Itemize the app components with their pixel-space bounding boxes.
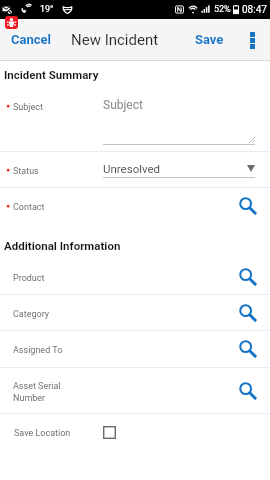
staticText: Incident Summary — [4, 68, 99, 81]
button[interactable]: Product — [0, 259, 270, 294]
button[interactable]: Search — [233, 334, 263, 364]
staticText: Asset Serial Number — [13, 381, 61, 403]
button[interactable]: Save Location checkbox — [103, 422, 123, 442]
staticText: Contact — [13, 202, 45, 213]
staticText: Subject — [103, 98, 143, 112]
button[interactable]: Search — [233, 298, 263, 328]
staticText: Save Location — [14, 428, 71, 439]
staticText: Unresolved — [103, 162, 247, 175]
button[interactable]: Search — [233, 191, 263, 221]
staticText: Category — [13, 309, 50, 320]
staticText: Status — [13, 166, 39, 177]
staticText: Product — [13, 273, 45, 284]
button[interactable]: Status — [0, 152, 270, 187]
button[interactable]: Cancel — [0, 19, 62, 60]
button[interactable]: Category — [0, 295, 270, 330]
button[interactable]: Save — [185, 19, 234, 60]
staticText: New Incident — [71, 31, 159, 49]
button[interactable]: Subject — [0, 90, 270, 151]
staticText: 08:47 — [242, 4, 267, 16]
button[interactable]: Save Location — [0, 414, 270, 450]
button[interactable]: Contact — [0, 188, 270, 224]
staticText: Save — [195, 32, 224, 47]
staticText: Subject — [13, 102, 43, 113]
staticText: Cancel — [11, 32, 52, 47]
button[interactable]: Asset Serial Number — [0, 368, 270, 413]
button[interactable]: More options — [234, 19, 270, 60]
staticText: 52% — [214, 4, 231, 15]
staticText: Additional Information — [4, 239, 121, 252]
button[interactable]: Search — [233, 376, 263, 406]
staticText: 19° — [40, 4, 54, 15]
button[interactable]: Search — [233, 262, 263, 292]
button[interactable]: Assigned To — [0, 331, 270, 367]
staticText: Assigned To — [13, 345, 63, 356]
